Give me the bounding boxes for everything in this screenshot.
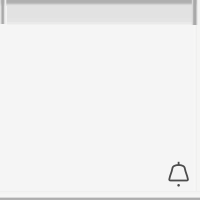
button[interactable]: Ring doorbell xyxy=(0,0,200,200)
